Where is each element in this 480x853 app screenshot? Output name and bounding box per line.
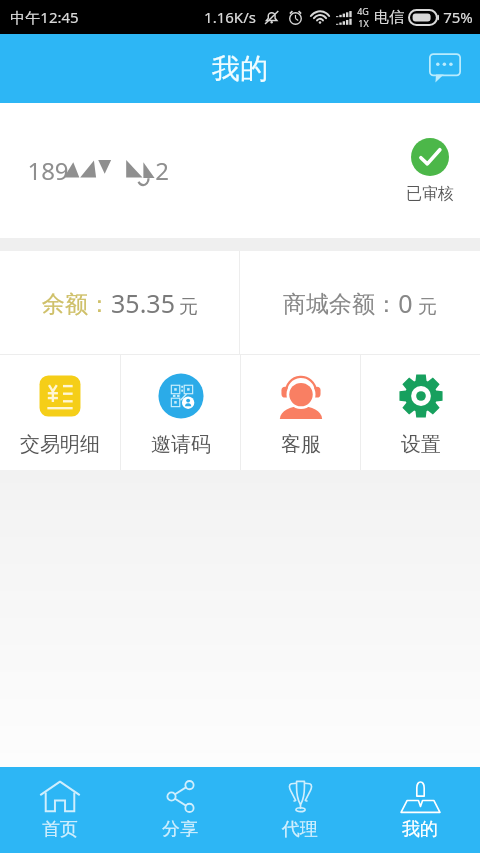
staticText: 1.16K/s bbox=[204, 7, 256, 27]
staticText: 元 bbox=[179, 295, 198, 319]
button[interactable]: 首页 bbox=[0, 767, 120, 853]
staticText: 2 bbox=[155, 154, 169, 187]
button[interactable]: 分享 bbox=[120, 767, 240, 853]
staticText: 189 bbox=[27, 154, 69, 187]
staticText: 0 bbox=[398, 286, 413, 320]
staticText: 电信 bbox=[374, 8, 404, 27]
button[interactable]: 客服 bbox=[241, 355, 360, 470]
staticText: 分享 bbox=[162, 818, 198, 841]
staticText: 75% bbox=[443, 7, 473, 27]
staticText: 设置 bbox=[401, 432, 441, 457]
button[interactable]: 邀请码 bbox=[121, 355, 240, 470]
staticText: 4G bbox=[357, 5, 369, 17]
staticText: 中午12:45 bbox=[10, 7, 79, 27]
staticText: 1X bbox=[358, 17, 369, 29]
button[interactable]: 我的 bbox=[360, 767, 480, 853]
button[interactable]: 交易明细 bbox=[0, 355, 120, 470]
button[interactable]: 已审核 bbox=[406, 138, 454, 204]
staticText: 我的 bbox=[212, 51, 268, 86]
staticText: 余额： bbox=[42, 290, 111, 319]
button[interactable]: 代理 bbox=[240, 767, 360, 853]
staticText: 邀请码 bbox=[151, 432, 211, 457]
button[interactable]: 余额： bbox=[0, 251, 239, 354]
button[interactable]: Messages bbox=[419, 43, 471, 95]
button[interactable]: 设置 bbox=[361, 355, 480, 470]
staticText: 我的 bbox=[402, 818, 438, 841]
staticText: 已审核 bbox=[406, 184, 454, 204]
staticText: 首页 bbox=[42, 818, 78, 841]
button[interactable]: 商城余额： bbox=[240, 251, 480, 354]
staticText: 商城余额： bbox=[283, 290, 398, 319]
staticText: 交易明细 bbox=[20, 432, 100, 457]
staticText: 元 bbox=[413, 293, 437, 319]
staticText: 35.35 bbox=[111, 286, 175, 320]
staticText: 代理 bbox=[282, 818, 318, 841]
staticText: 客服 bbox=[281, 432, 321, 457]
